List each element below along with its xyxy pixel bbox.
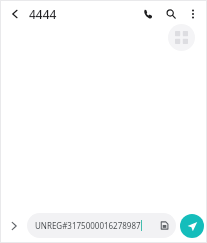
button[interactable]: Expand	[3, 215, 25, 237]
button[interactable]: Apps grid	[168, 24, 195, 51]
button[interactable]: Call	[138, 4, 158, 24]
button[interactable]: Send	[180, 214, 204, 238]
button[interactable]: More options	[183, 4, 203, 24]
button[interactable]: Search	[161, 4, 181, 24]
button[interactable]: Back	[5, 4, 25, 24]
staticText: UNREG#3175000016278987	[35, 220, 141, 231]
staticText: 4444	[29, 6, 57, 22]
button[interactable]: UNREG#3175000016278987	[27, 213, 176, 238]
button[interactable]: SIM	[157, 218, 172, 233]
